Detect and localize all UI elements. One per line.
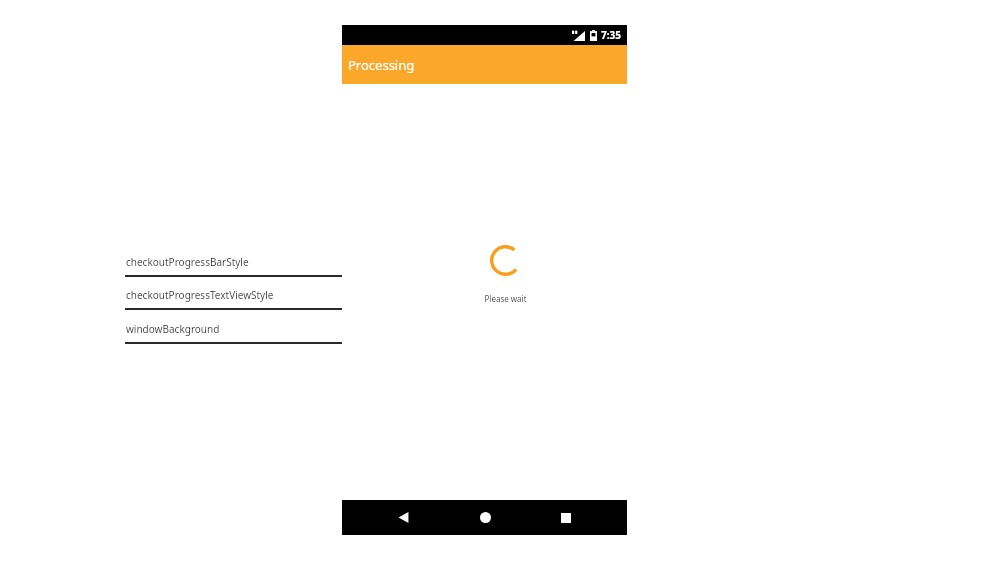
button[interactable]: Recent apps bbox=[546, 500, 586, 535]
button[interactable]: Home bbox=[465, 500, 505, 535]
staticText: checkoutProgressBarStyle bbox=[126, 255, 249, 269]
staticText: windowBackground bbox=[126, 322, 220, 336]
staticText: Please wait bbox=[484, 293, 527, 304]
button[interactable]: Back bbox=[383, 500, 423, 535]
staticText: 7:35 bbox=[601, 28, 621, 42]
staticText: checkoutProgressTextViewStyle bbox=[126, 288, 274, 302]
staticText: Processing bbox=[348, 56, 415, 74]
